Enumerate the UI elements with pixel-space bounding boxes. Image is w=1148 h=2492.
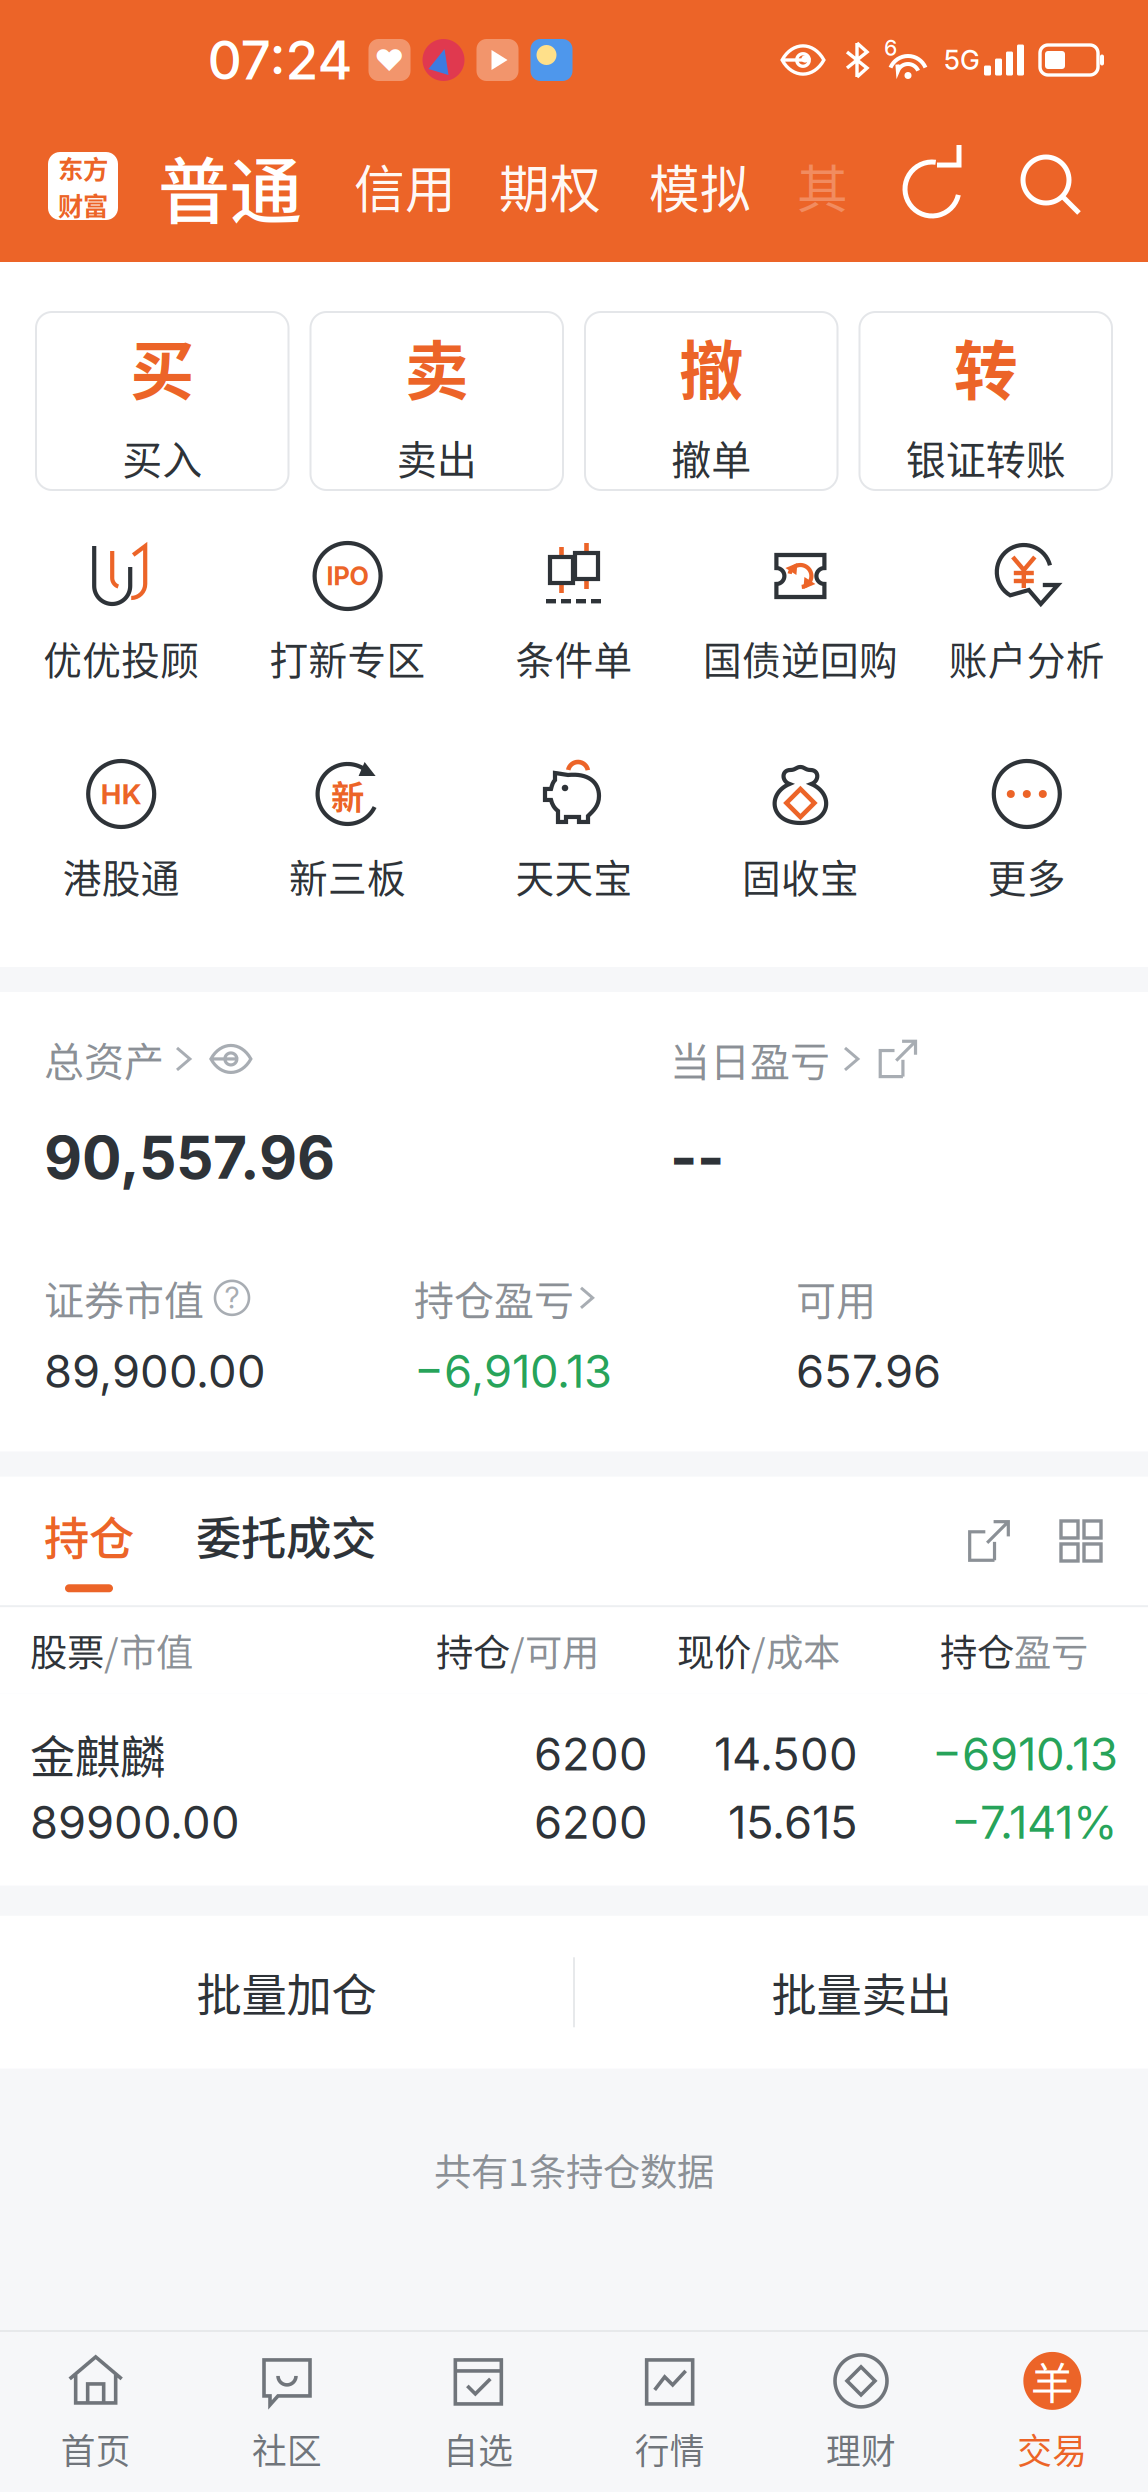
- staticText: 14.500: [714, 1727, 858, 1782]
- staticText: 可用: [796, 1269, 876, 1327]
- staticText: 持仓: [44, 1503, 134, 1568]
- staticText: /成本: [751, 1623, 840, 1677]
- staticText: 模拟: [649, 149, 751, 223]
- button[interactable]: 批量加仓: [0, 1916, 573, 2069]
- button[interactable]: Search: [1016, 151, 1086, 221]
- staticText: 撤: [679, 320, 743, 412]
- staticText: 6200: [534, 1727, 648, 1782]
- staticText: 6: [884, 35, 897, 61]
- button[interactable]: 行情: [574, 2332, 765, 2492]
- staticText: 港股通: [63, 848, 180, 904]
- staticText: --: [670, 1122, 724, 1193]
- button[interactable]: HK: [8, 758, 234, 904]
- staticText: 批量加仓: [196, 1959, 376, 2025]
- staticText: 卖: [405, 320, 469, 412]
- staticText: 社区: [252, 2424, 322, 2474]
- staticText: −6910.13: [932, 1727, 1118, 1782]
- staticText: 账户分析: [949, 630, 1105, 686]
- button[interactable]: 新: [234, 758, 461, 904]
- staticText: IPO: [327, 561, 369, 591]
- button[interactable]: 社区: [191, 2332, 383, 2492]
- button[interactable]: 委托成交: [196, 1477, 376, 1605]
- button[interactable]: 转: [859, 312, 1112, 490]
- staticText: 天天宝: [515, 848, 632, 904]
- button[interactable]: Refresh: [900, 151, 970, 221]
- button[interactable]: 期权: [499, 149, 601, 223]
- staticText: 交易: [1017, 2424, 1087, 2474]
- button[interactable]: 持仓: [44, 1477, 134, 1605]
- staticText: 持仓: [436, 1623, 510, 1677]
- staticText: 15.615: [728, 1795, 858, 1850]
- staticText: 总资产: [44, 1030, 164, 1088]
- staticText: /市值: [104, 1623, 193, 1677]
- staticText: −6,910.13: [414, 1344, 612, 1399]
- button[interactable]: IPO: [234, 540, 461, 686]
- button[interactable]: 天天宝: [461, 758, 687, 904]
- staticText: 委托成交: [196, 1503, 376, 1568]
- staticText: 共有1条持仓数据: [434, 2143, 714, 2197]
- button[interactable]: 模拟: [649, 149, 751, 223]
- staticText: 期权: [499, 149, 601, 223]
- staticText: 优优投顾: [43, 630, 199, 686]
- staticText: 羊: [1031, 2350, 1074, 2412]
- staticText: ?: [224, 1280, 239, 1316]
- staticText: 证券市值: [44, 1269, 204, 1327]
- button[interactable]: 信用: [354, 149, 456, 223]
- staticText: 打新专区: [270, 630, 426, 686]
- button[interactable]: 持仓盈亏: [414, 1269, 796, 1399]
- staticText: 普通: [158, 134, 302, 238]
- staticText: 东方: [58, 149, 108, 186]
- button[interactable]: Expand: [966, 1518, 1012, 1564]
- staticText: ♥: [374, 42, 404, 78]
- staticText: /可用: [510, 1623, 599, 1677]
- staticText: 买入: [122, 428, 202, 486]
- button[interactable]: 总资产: [44, 1030, 253, 1088]
- staticText: 新三板: [289, 848, 406, 904]
- staticText: 国债逆回购: [703, 630, 898, 686]
- staticText: HK: [101, 777, 142, 811]
- staticText: 89900.00: [30, 1795, 240, 1850]
- staticText: 6200: [534, 1795, 648, 1850]
- button[interactable]: 撤: [585, 312, 837, 490]
- staticText: 买: [130, 320, 194, 412]
- button[interactable]: 买: [36, 312, 288, 490]
- staticText: 其: [797, 149, 848, 223]
- staticText: 首页: [61, 2424, 131, 2474]
- button[interactable]: 条件单: [461, 540, 687, 686]
- button[interactable]: 理财: [765, 2332, 957, 2492]
- button[interactable]: 金麒麟: [0, 1693, 1148, 1886]
- button[interactable]: 固收宝: [687, 758, 914, 904]
- staticText: 07:24: [207, 28, 352, 92]
- staticText: 股票: [30, 1623, 104, 1677]
- staticText: 撤单: [671, 428, 751, 486]
- button[interactable]: 国债逆回购: [687, 540, 914, 686]
- button[interactable]: 当日盈亏: [670, 1030, 919, 1088]
- staticText: 银证转账: [906, 428, 1066, 486]
- staticText: 90,557.96: [44, 1122, 335, 1193]
- staticText: 固收宝: [742, 848, 859, 904]
- staticText: 卖出: [397, 428, 477, 486]
- button[interactable]: East Money: [48, 152, 118, 220]
- button[interactable]: 卖: [310, 312, 563, 490]
- button[interactable]: 普通: [158, 134, 302, 238]
- staticText: 金麒麟: [30, 1721, 165, 1787]
- staticText: 批量卖出: [771, 1959, 951, 2025]
- staticText: 现价: [677, 1623, 751, 1677]
- staticText: 条件单: [515, 630, 632, 686]
- button[interactable]: 羊: [957, 2332, 1148, 2492]
- staticText: 信用: [354, 149, 456, 223]
- staticText: 转: [954, 320, 1018, 412]
- staticText: 财富: [58, 186, 108, 223]
- button[interactable]: 批量卖出: [575, 1916, 1148, 2069]
- staticText: 盈亏: [1014, 1623, 1088, 1677]
- staticText: 当日盈亏: [670, 1030, 830, 1088]
- staticText: −7.141%: [951, 1795, 1118, 1850]
- button[interactable]: 更多: [914, 758, 1140, 904]
- button[interactable]: Grid view: [1058, 1518, 1104, 1564]
- staticText: 持仓: [940, 1623, 1014, 1677]
- button[interactable]: 首页: [0, 2332, 191, 2492]
- button[interactable]: 账户分析: [914, 540, 1140, 686]
- staticText: 5G: [944, 44, 980, 76]
- button[interactable]: 优优投顾: [8, 540, 234, 686]
- button[interactable]: 自选: [383, 2332, 574, 2492]
